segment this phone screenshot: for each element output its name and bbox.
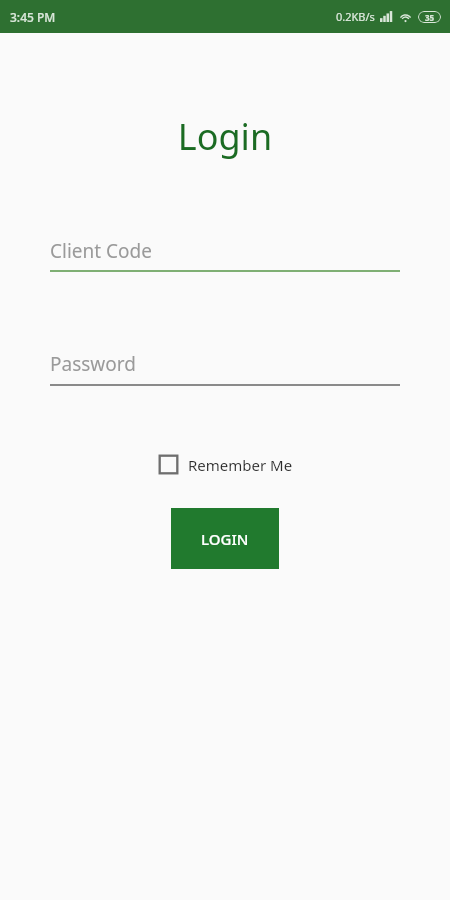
staticText: Client Code — [50, 238, 152, 264]
staticText: 3:45 PM — [10, 9, 56, 25]
button[interactable]: Password — [50, 351, 400, 386]
button[interactable]: Client Code — [50, 238, 400, 272]
button[interactable]: LOGIN — [171, 508, 279, 569]
staticText: 35 — [425, 12, 435, 23]
staticText: LOGIN — [201, 529, 249, 549]
staticText: Remember Me — [188, 455, 293, 475]
button[interactable]: Remember Me — [158, 454, 293, 475]
staticText: 0.2KB/s — [336, 9, 375, 24]
staticText: Login — [0, 112, 450, 161]
staticText: Password — [50, 351, 136, 377]
